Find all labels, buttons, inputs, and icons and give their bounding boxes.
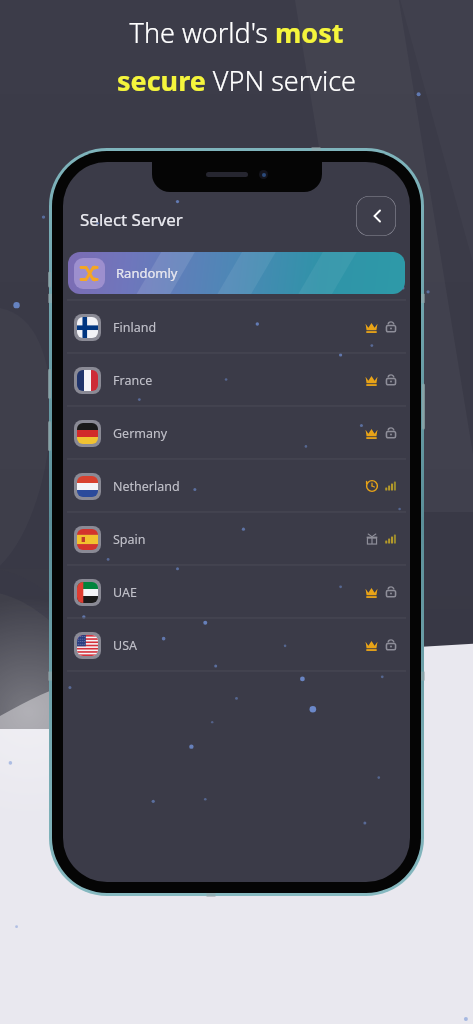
staticText: Select Server xyxy=(80,208,183,231)
button[interactable]: Randomly xyxy=(68,252,405,294)
staticText: Germany xyxy=(113,425,168,442)
button[interactable]: Finland xyxy=(63,301,410,353)
button[interactable]: Germany xyxy=(63,407,410,459)
button[interactable]: UAE xyxy=(63,566,410,618)
staticText: UAE xyxy=(113,584,137,601)
staticText: Spain xyxy=(113,531,146,548)
button[interactable]: Back xyxy=(356,196,396,236)
button[interactable]: France xyxy=(63,354,410,406)
button[interactable]: Netherland xyxy=(63,460,410,512)
staticText: Netherland xyxy=(113,478,180,495)
staticText: The world's most secure VPN service xyxy=(117,14,356,99)
staticText: Randomly xyxy=(116,264,178,282)
button[interactable]: USA xyxy=(63,619,410,671)
button[interactable]: Spain xyxy=(63,513,410,565)
staticText: Finland xyxy=(113,319,157,336)
staticText: France xyxy=(113,372,153,389)
staticText: USA xyxy=(113,637,137,654)
